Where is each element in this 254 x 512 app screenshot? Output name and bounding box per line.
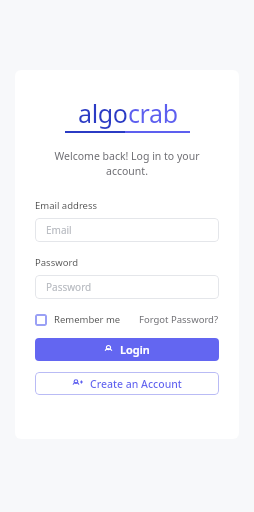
staticText: Email address [35, 199, 98, 212]
staticText: algo [78, 96, 128, 130]
button[interactable]: Remember me [35, 313, 121, 326]
staticText: Password [35, 256, 78, 269]
staticText: Remember me [54, 313, 121, 326]
staticText: Login [120, 342, 150, 357]
staticText: crab [128, 96, 178, 130]
staticText: Welcome back! Log in to your account. [35, 149, 219, 178]
staticText: Password [46, 280, 92, 294]
button[interactable]: Forgot Password? [139, 313, 219, 326]
staticText: Email [46, 223, 72, 237]
button[interactable]: Create an Account [35, 372, 219, 395]
staticText: Create an Account [90, 377, 182, 391]
button[interactable]: Login [35, 338, 219, 361]
button[interactable]: Password [35, 275, 219, 299]
button[interactable]: Email [35, 218, 219, 242]
staticText: Forgot Password? [139, 313, 219, 326]
